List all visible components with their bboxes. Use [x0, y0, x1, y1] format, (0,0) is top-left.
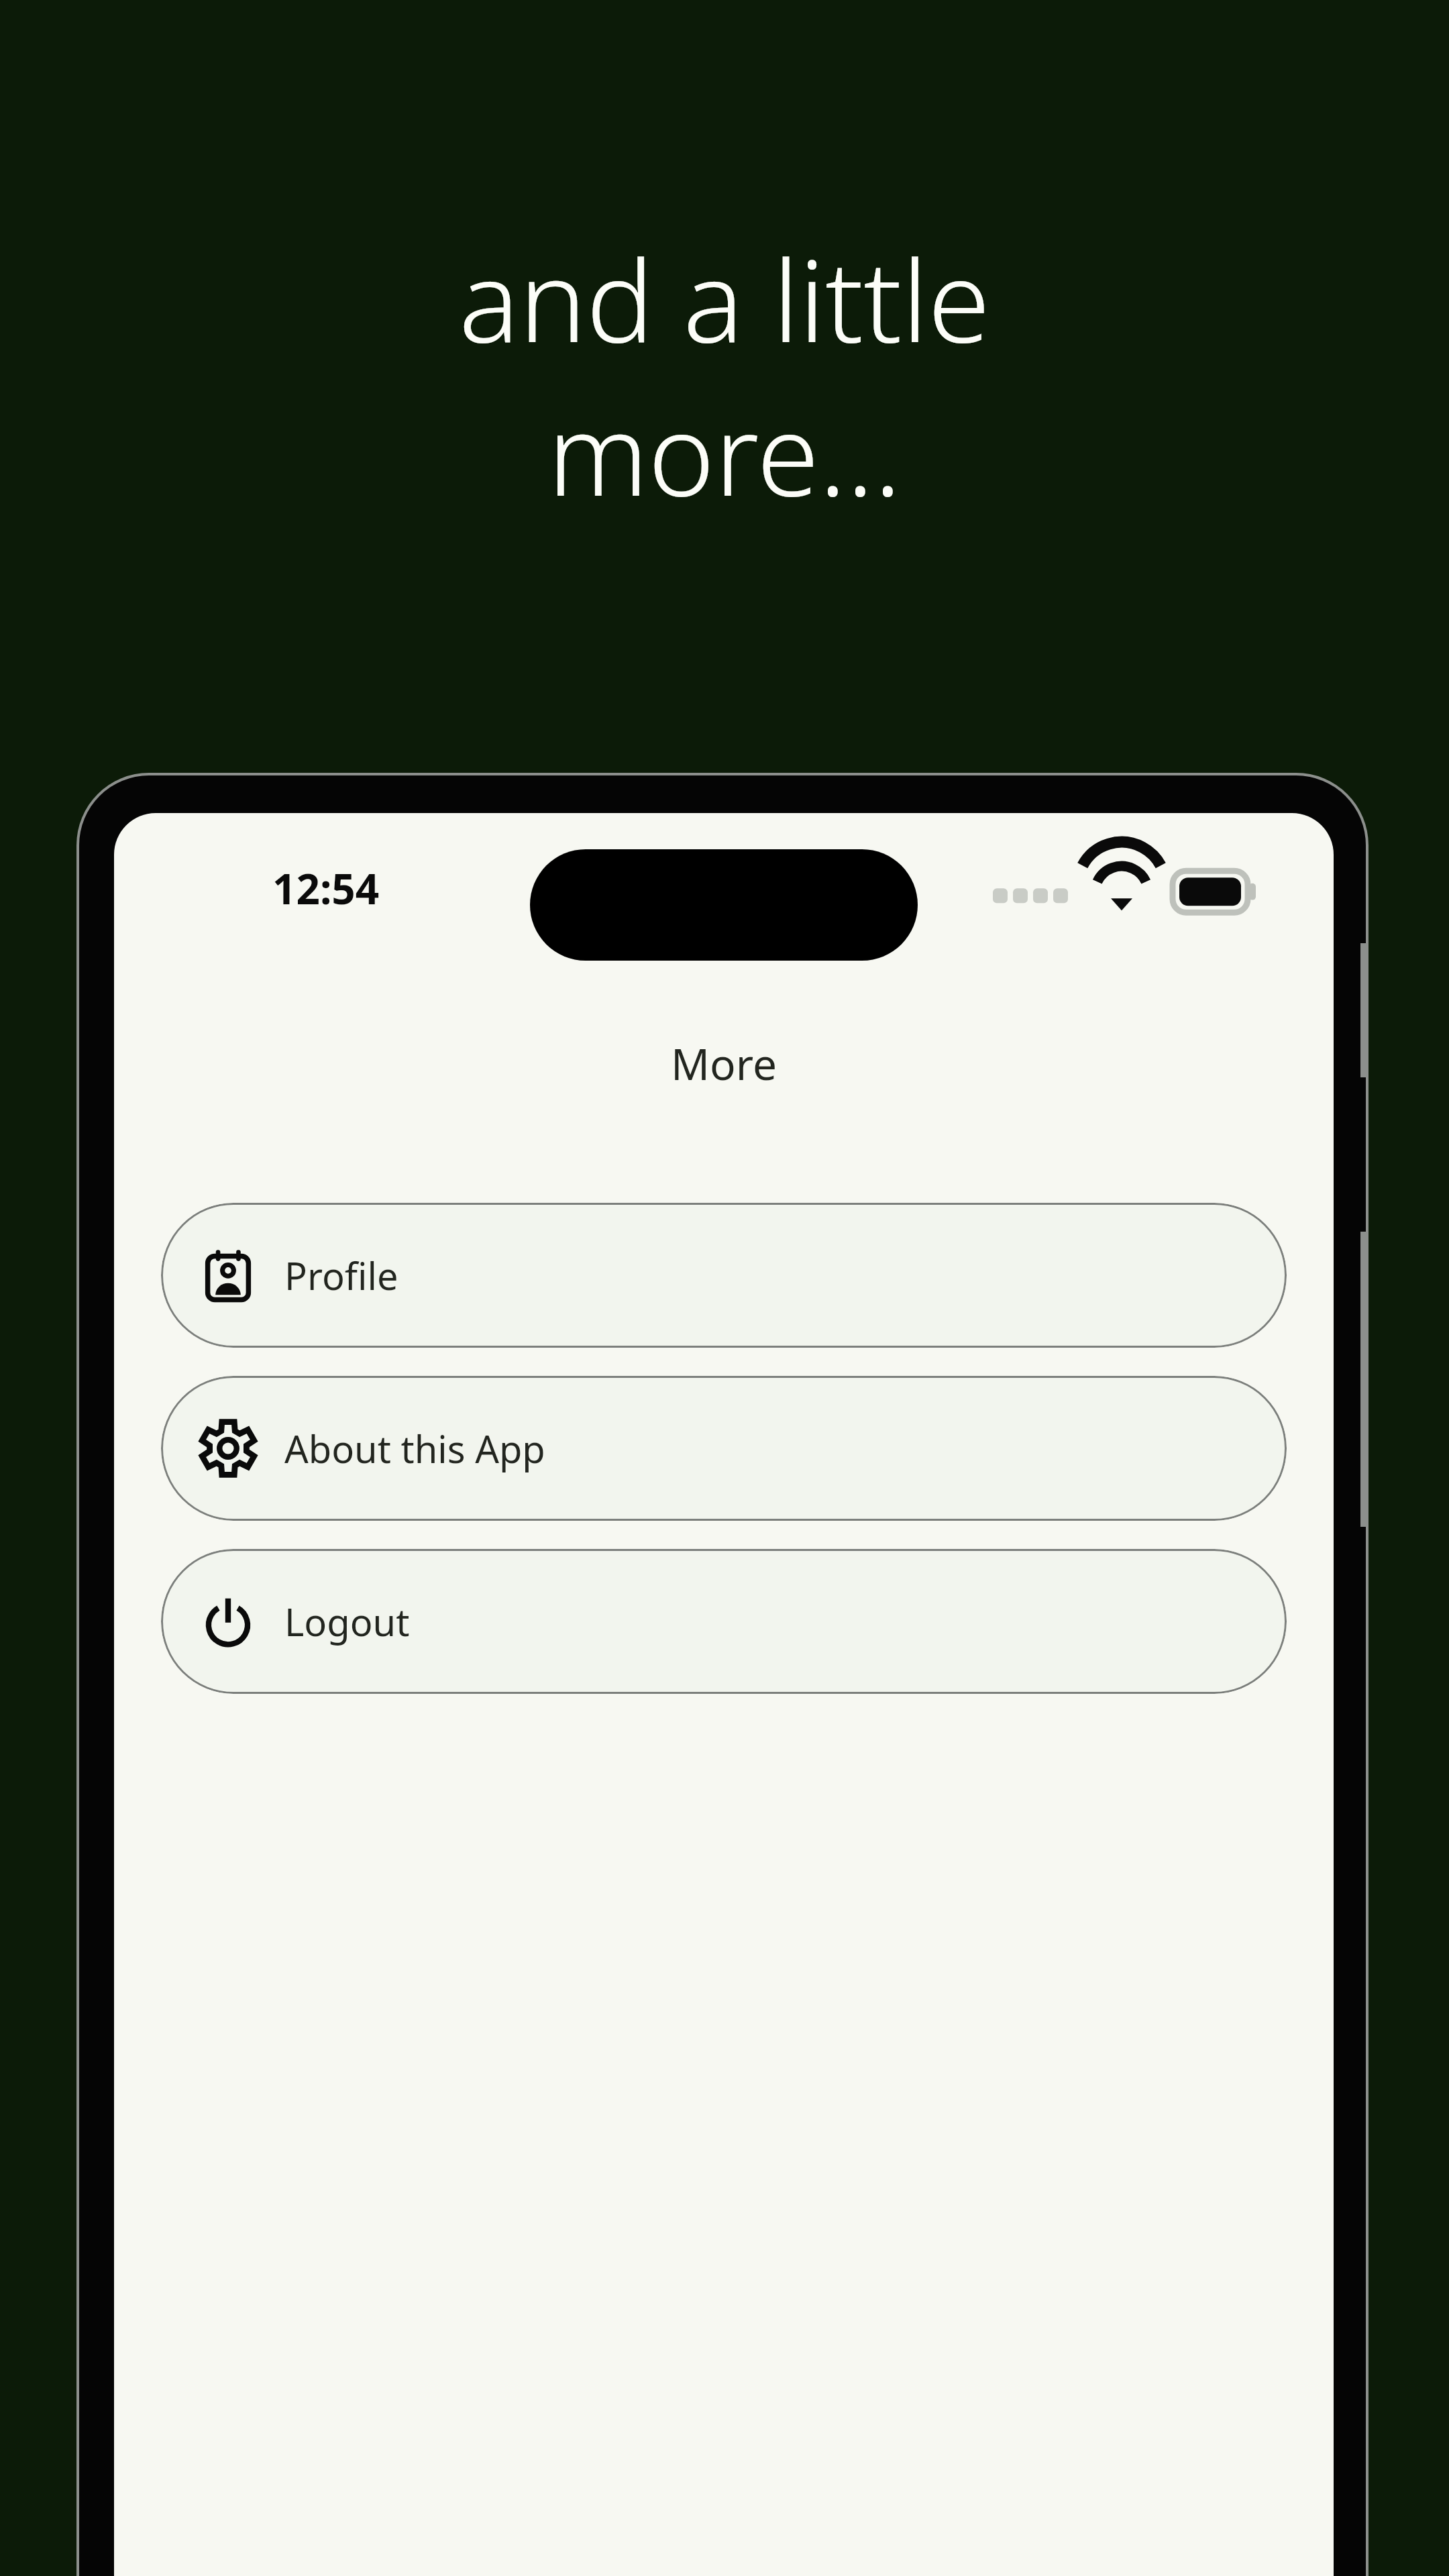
staticText: 12:54 — [272, 860, 380, 916]
button[interactable]: About this App — [161, 1376, 1287, 1521]
staticText: About this App — [284, 1423, 545, 1474]
staticText: More — [671, 1034, 777, 1093]
staticText: Logout — [284, 1596, 410, 1647]
staticText: and a little — [459, 221, 990, 375]
staticText: Profile — [284, 1250, 398, 1301]
staticText: more... — [547, 375, 902, 529]
button[interactable]: Logout — [161, 1549, 1287, 1694]
button[interactable]: Profile — [161, 1203, 1287, 1348]
